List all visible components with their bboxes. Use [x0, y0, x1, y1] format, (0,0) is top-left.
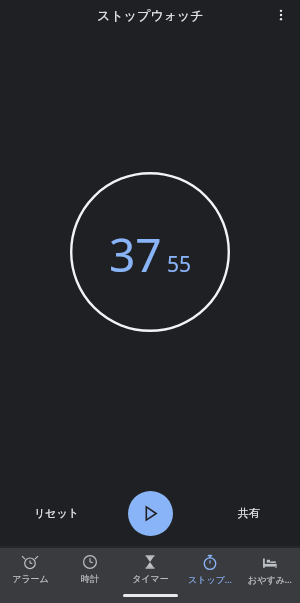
- staticText: 55: [167, 250, 192, 279]
- button[interactable]: アラーム: [0, 548, 60, 603]
- staticText: ストップ…: [188, 573, 232, 585]
- button[interactable]: ストップ…: [180, 548, 240, 603]
- staticText: アラーム: [12, 573, 49, 584]
- button[interactable]: タイマー: [120, 548, 180, 603]
- staticText: リセット: [34, 506, 80, 520]
- button[interactable]: 時計: [60, 548, 120, 603]
- button[interactable]: More options: [268, 2, 294, 28]
- staticText: ストップウォッチ: [97, 7, 204, 23]
- button[interactable]: リセット: [22, 500, 92, 526]
- button[interactable]: 共有: [226, 500, 272, 526]
- staticText: おやすみ…: [248, 573, 292, 585]
- button[interactable]: おやすみ…: [240, 548, 300, 603]
- staticText: タイマー: [132, 573, 169, 584]
- staticText: 時計: [81, 573, 99, 584]
- staticText: 37: [109, 223, 162, 286]
- staticText: 共有: [238, 506, 260, 520]
- button[interactable]: Start: [128, 491, 173, 536]
